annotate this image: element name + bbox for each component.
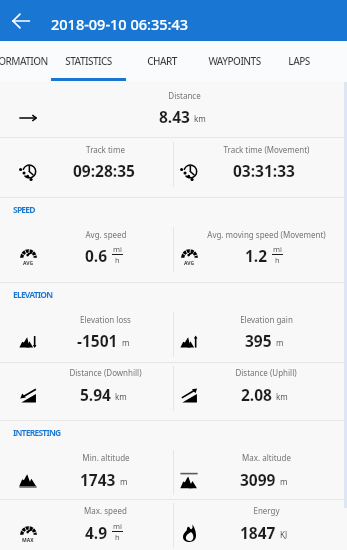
- staticText: 3099: [240, 469, 276, 490]
- staticText: h: [115, 532, 120, 542]
- staticText: Avg. speed: [85, 229, 127, 240]
- staticText: Max. speed: [84, 505, 127, 516]
- staticText: SPEED: [13, 204, 35, 216]
- staticText: 2.08: [241, 384, 272, 405]
- staticText: mi: [273, 244, 282, 254]
- staticText: ELEVATION: [13, 289, 53, 301]
- staticText: -1501: [77, 330, 118, 351]
- staticText: 5.94: [80, 384, 111, 405]
- button[interactable]: [0, 223, 173, 276]
- staticText: h: [115, 255, 120, 265]
- staticText: Elevation gain: [240, 314, 293, 325]
- button[interactable]: [0, 138, 173, 191]
- staticText: Min. altitude: [82, 452, 130, 463]
- staticText: Distance (Downhill): [69, 367, 142, 378]
- staticText: km: [115, 391, 127, 402]
- staticText: Max. altitude: [242, 452, 291, 463]
- button[interactable]: [173, 362, 347, 415]
- staticText: mi: [113, 521, 122, 531]
- staticText: Distance (Uphill): [235, 367, 297, 378]
- button[interactable]: [0, 84, 347, 137]
- staticText: Track time (Movement): [223, 144, 310, 155]
- staticText: 395: [245, 330, 272, 351]
- button[interactable]: CHART: [125, 41, 198, 81]
- button[interactable]: [0, 362, 173, 415]
- button[interactable]: [173, 499, 347, 550]
- button[interactable]: [173, 446, 347, 499]
- staticText: KJ: [280, 529, 288, 540]
- staticText: WAYPOINTS: [208, 54, 261, 68]
- button[interactable]: [0, 499, 173, 550]
- staticText: INTERESTING: [13, 427, 61, 439]
- staticText: 4.9: [85, 522, 108, 543]
- staticText: 09:28:35: [73, 160, 135, 181]
- staticText: 2018-09-10 06:35:43: [51, 14, 189, 34]
- staticText: km: [276, 391, 288, 402]
- staticText: Elevation loss: [80, 314, 131, 325]
- button[interactable]: [0, 446, 173, 499]
- button[interactable]: WAYPOINTS: [198, 41, 271, 81]
- button[interactable]: LAPS: [271, 41, 326, 81]
- staticText: 8.43: [159, 106, 190, 127]
- staticText: 1743: [80, 469, 116, 490]
- staticText: STATISTICS: [65, 54, 112, 68]
- button[interactable]: INFORMATION: [0, 41, 52, 81]
- staticText: INFORMATION: [0, 54, 48, 68]
- staticText: m: [276, 337, 284, 348]
- staticText: MAX: [22, 537, 34, 544]
- staticText: m: [280, 476, 288, 487]
- staticText: m: [120, 476, 128, 487]
- button[interactable]: [173, 308, 347, 361]
- staticText: Energy: [253, 505, 280, 516]
- staticText: AVG: [23, 260, 34, 267]
- staticText: 1.2: [245, 245, 268, 266]
- staticText: mi: [113, 244, 122, 254]
- button[interactable]: STATISTICS: [52, 41, 125, 81]
- button[interactable]: [173, 138, 347, 191]
- staticText: h: [275, 255, 280, 265]
- button[interactable]: [173, 223, 347, 276]
- staticText: m: [122, 337, 130, 348]
- staticText: km: [194, 113, 206, 124]
- staticText: Avg. moving speed (Movement): [207, 229, 326, 240]
- staticText: Track time: [86, 144, 125, 155]
- staticText: 03:31:33: [233, 160, 295, 181]
- staticText: AVG: [184, 260, 195, 267]
- staticText: 1847: [240, 522, 276, 543]
- staticText: Distance: [168, 90, 201, 101]
- staticText: CHART: [147, 54, 177, 68]
- staticText: LAPS: [288, 54, 310, 68]
- staticText: 0.6: [85, 245, 108, 266]
- button[interactable]: Back: [0, 0, 41, 41]
- button[interactable]: [0, 308, 173, 361]
